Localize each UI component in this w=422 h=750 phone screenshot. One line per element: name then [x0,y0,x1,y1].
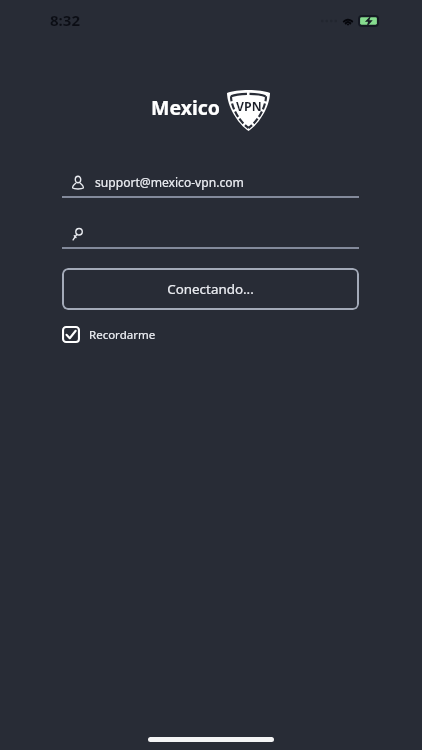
other: Battery charging [358,15,379,27]
staticText: Conectando... [167,280,254,298]
staticText: Mexico [151,94,220,121]
other: Wi-Fi [341,14,355,25]
button[interactable]: Password field [62,219,359,249]
button[interactable]: Recordarme [62,326,156,343]
button[interactable]: Email field [62,168,359,198]
staticText: Recordarme [89,327,156,343]
staticText: VPN [236,98,262,115]
staticText: support@mexico-vpn.com [95,174,244,190]
button[interactable]: Conectando... [62,268,359,310]
staticText: 8:32 [50,10,80,30]
